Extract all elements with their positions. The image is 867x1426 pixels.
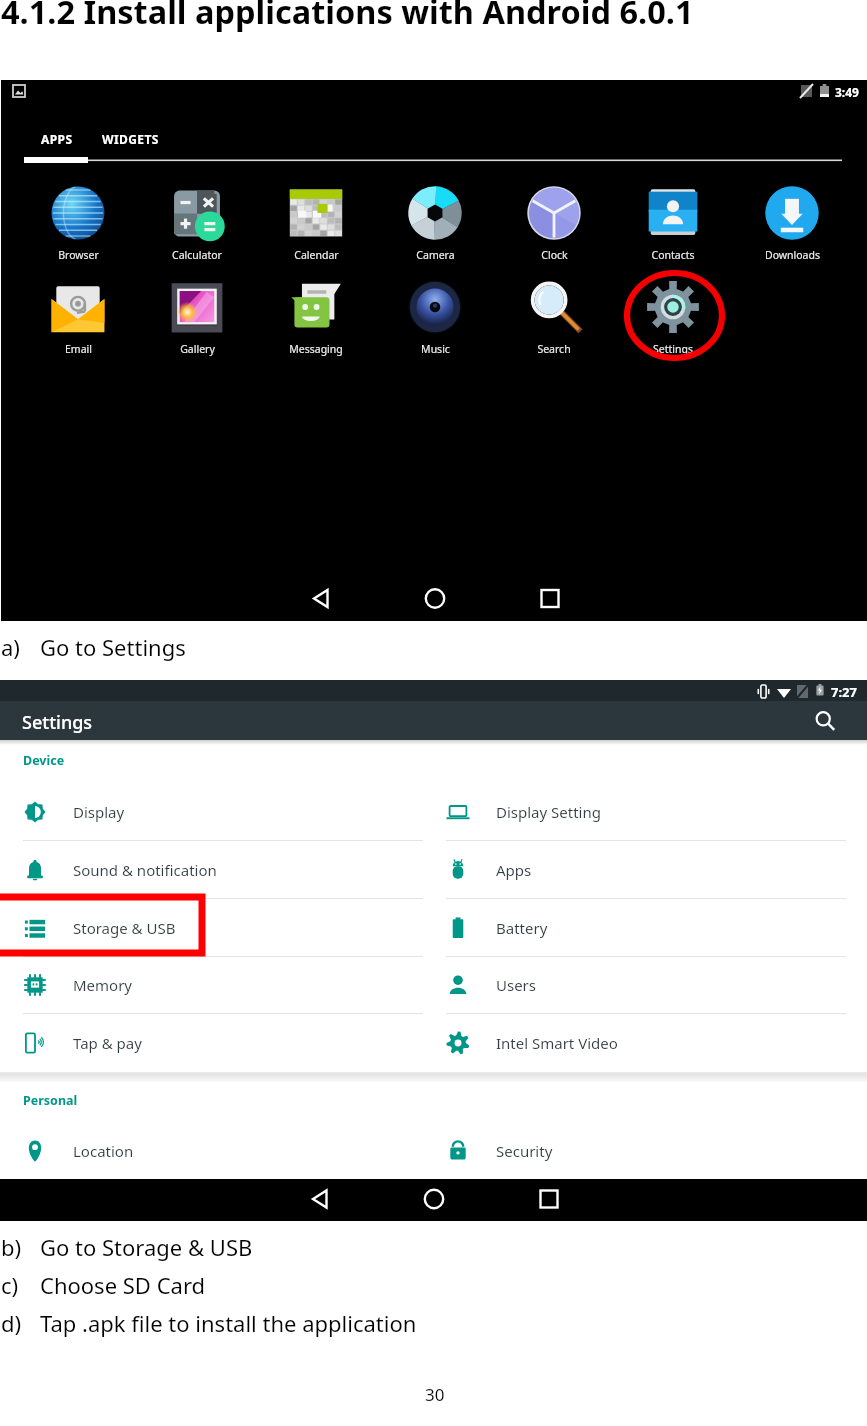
staticText: Sound & notification: [73, 860, 217, 880]
button[interactable]: Battery: [423, 899, 846, 957]
staticText: Storage & USB: [73, 918, 176, 938]
staticText: Display: [73, 802, 125, 822]
button[interactable]: Recent apps: [529, 578, 571, 621]
button[interactable]: Search: [506, 277, 602, 349]
button[interactable]: Search: [810, 706, 840, 736]
staticText: 4.1.2 Install applications with Android …: [1, 0, 694, 33]
staticText: Messaging: [289, 342, 343, 356]
button[interactable]: Email: [30, 277, 126, 349]
staticText: APPS: [41, 131, 73, 147]
staticText: WIDGETS: [102, 131, 159, 147]
button[interactable]: Apps: [423, 841, 846, 899]
button[interactable]: Home: [414, 578, 456, 621]
staticText: Security: [496, 1141, 553, 1161]
staticText: Battery: [496, 918, 548, 938]
button[interactable]: Memory: [0, 956, 423, 1014]
staticText: Camera: [416, 248, 455, 262]
staticText: Go to Storage & USB: [40, 1232, 253, 1262]
staticText: Tap & pay: [73, 1033, 142, 1053]
staticText: Calendar: [294, 248, 339, 262]
staticText: Personal: [23, 1092, 78, 1109]
staticText: Email: [65, 342, 92, 356]
staticText: Search: [537, 342, 571, 356]
button[interactable]: Display: [0, 783, 423, 841]
staticText: Browser: [58, 248, 99, 262]
staticText: 30: [425, 1383, 445, 1406]
button[interactable]: WIDGETS: [97, 118, 163, 163]
button[interactable]: Sound & notification: [0, 841, 423, 899]
staticText: Apps: [496, 860, 532, 880]
staticText: Device: [23, 752, 65, 769]
staticText: d): [1, 1308, 22, 1338]
button[interactable]: Location: [0, 1122, 423, 1180]
button[interactable]: Music: [387, 277, 483, 349]
button[interactable]: Messaging: [268, 277, 364, 349]
button[interactable]: Contacts: [625, 183, 721, 255]
button[interactable]: Gallery: [149, 277, 245, 349]
button[interactable]: Display Setting: [423, 783, 846, 841]
staticText: Choose SD Card: [40, 1270, 206, 1300]
button[interactable]: Tap & pay: [0, 1014, 423, 1072]
staticText: Clock: [541, 248, 568, 262]
staticText: Intel Smart Video: [496, 1033, 618, 1053]
button[interactable]: APPS: [25, 118, 88, 163]
button[interactable]: Browser: [30, 183, 126, 255]
button[interactable]: Storage & USB: [0, 899, 423, 957]
staticText: Music: [421, 342, 450, 356]
button[interactable]: Intel Smart Video: [423, 1014, 846, 1072]
staticText: Downloads: [765, 248, 820, 262]
staticText: b): [1, 1232, 22, 1262]
staticText: Settings: [653, 342, 693, 356]
button[interactable]: Home: [413, 1179, 455, 1221]
button[interactable]: Downloads: [744, 183, 840, 255]
button[interactable]: Security: [423, 1122, 846, 1180]
staticText: Users: [496, 975, 536, 995]
staticText: Go to Settings: [40, 632, 186, 662]
button[interactable]: Calculator: [149, 183, 245, 255]
staticText: a): [1, 632, 20, 662]
staticText: Display Setting: [496, 802, 601, 822]
button[interactable]: Clock: [506, 183, 602, 255]
staticText: Gallery: [180, 342, 215, 356]
staticText: Tap .apk file to install the application: [40, 1308, 417, 1338]
staticText: 7:27: [831, 683, 857, 701]
staticText: Memory: [73, 975, 133, 995]
staticText: Calculator: [172, 248, 222, 262]
staticText: Settings: [22, 710, 93, 735]
staticText: c): [1, 1270, 19, 1300]
button[interactable]: Recent apps: [528, 1179, 570, 1221]
button[interactable]: Calendar: [268, 183, 364, 255]
staticText: Contacts: [651, 248, 695, 262]
button[interactable]: Settings: [625, 277, 721, 349]
button[interactable]: Back: [300, 578, 342, 621]
button[interactable]: Users: [423, 956, 846, 1014]
staticText: 3:49: [835, 84, 859, 100]
staticText: Location: [73, 1141, 134, 1161]
button[interactable]: Back: [299, 1179, 341, 1221]
button[interactable]: Camera: [387, 183, 483, 255]
